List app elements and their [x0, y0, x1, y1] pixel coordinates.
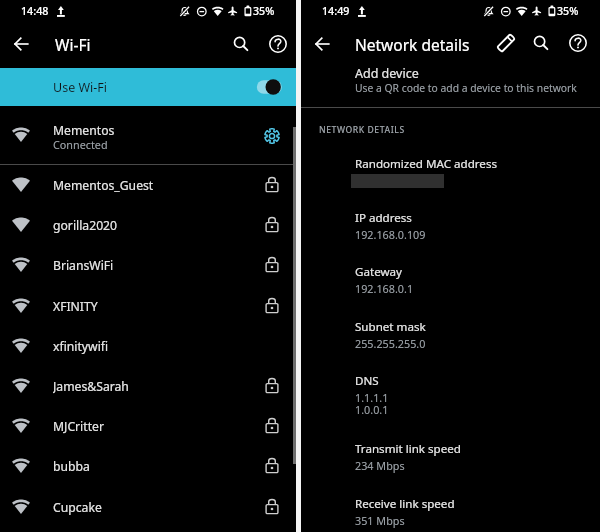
staticText: Add device: [355, 65, 419, 82]
button[interactable]: xfinitywifi: [0, 326, 296, 366]
button[interactable]: MJCritter: [0, 406, 296, 446]
button[interactable]: Back: [6, 28, 38, 60]
staticText: 35%: [557, 4, 579, 18]
button[interactable]: Gateway: [301, 260, 600, 294]
staticText: BriansWiFi: [53, 257, 114, 273]
staticText: MJCritter: [53, 418, 104, 434]
staticText: IP address: [355, 210, 412, 226]
staticText: gorilla2020: [53, 217, 118, 233]
button[interactable]: bubba: [0, 446, 296, 486]
staticText: Network details: [355, 34, 470, 55]
button[interactable]: DNS: [301, 369, 600, 403]
button[interactable]: Randomized MAC address: [301, 152, 600, 186]
button[interactable]: Receive link speed: [301, 492, 600, 526]
button[interactable]: Use Wi-Fi: [0, 68, 296, 106]
staticText: 234 Mbps: [355, 458, 405, 473]
button[interactable]: Subnet mask: [301, 315, 600, 349]
staticText: Mementos_Guest: [53, 177, 154, 193]
button[interactable]: Search: [526, 28, 556, 58]
staticText: 1.0.0.1: [355, 402, 389, 417]
staticText: Wi-Fi: [55, 34, 91, 55]
staticText: NETWORK DETAILS: [319, 124, 405, 136]
button[interactable]: Cupcake: [0, 487, 296, 527]
button[interactable]: Help: [563, 28, 593, 58]
button[interactable]: Back: [307, 28, 339, 60]
staticText: 14:49: [322, 4, 350, 18]
staticText: Use Wi-Fi: [53, 79, 108, 96]
button[interactable]: XFINITY: [0, 286, 296, 326]
staticText: bubba: [53, 458, 90, 474]
staticText: Receive link speed: [355, 496, 455, 512]
button[interactable]: James&Sarah: [0, 366, 296, 406]
staticText: Use a QR code to add a device to this ne…: [355, 81, 577, 95]
staticText: Connected: [53, 137, 108, 152]
staticText: Mementos: [53, 122, 115, 138]
staticText: 35%: [253, 4, 275, 18]
button[interactable]: Network settings: [258, 122, 286, 150]
staticText: Cupcake: [53, 499, 102, 515]
button[interactable]: Search: [225, 28, 257, 60]
staticText: Randomized MAC address: [355, 156, 497, 172]
staticText: xfinitywifi: [53, 338, 109, 354]
staticText: Subnet mask: [355, 319, 426, 335]
staticText: XFINITY: [53, 298, 98, 314]
staticText: 192.168.0.1: [355, 281, 414, 296]
button[interactable]: Help: [262, 28, 294, 60]
staticText: DNS: [355, 373, 379, 389]
button[interactable]: Edit: [491, 28, 521, 58]
staticText: 255.255.255.0: [355, 336, 426, 351]
button[interactable]: BriansWiFi: [0, 245, 296, 285]
staticText: Gateway: [355, 264, 402, 280]
staticText: 192.168.0.109: [355, 227, 426, 242]
button[interactable]: Transmit link speed: [301, 437, 600, 471]
staticText: 351 Mbps: [355, 513, 405, 528]
staticText: 14:48: [21, 4, 49, 18]
staticText: Transmit link speed: [355, 441, 461, 457]
staticText: James&Sarah: [53, 378, 129, 394]
button[interactable]: Mementos: [0, 106, 296, 164]
button[interactable]: Add device: [301, 60, 600, 104]
staticText: 1.1.1.1: [355, 390, 389, 405]
button[interactable]: IP address: [301, 206, 600, 240]
button[interactable]: gorilla2020: [0, 205, 296, 245]
button[interactable]: Mementos_Guest: [0, 165, 296, 205]
